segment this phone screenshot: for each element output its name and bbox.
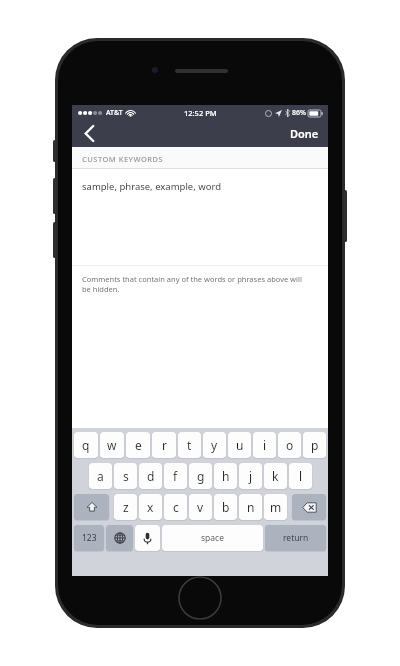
staticText: b: [222, 499, 230, 515]
staticText: a: [97, 468, 104, 484]
button[interactable]: q: [74, 432, 98, 458]
button[interactable]: u: [228, 432, 251, 458]
staticText: q: [82, 437, 90, 453]
staticText: s: [123, 468, 129, 484]
staticText: return: [283, 532, 309, 544]
staticText: t: [187, 437, 192, 453]
staticText: n: [247, 499, 255, 515]
staticText: j: [249, 468, 253, 484]
button[interactable]: Dictation: [135, 525, 160, 551]
staticText: CUSTOM KEYWORDS: [82, 154, 164, 164]
button[interactable]: b: [214, 494, 237, 520]
staticText: AT&T: [106, 108, 123, 118]
staticText: p: [311, 437, 319, 453]
button[interactable]: Done: [281, 120, 328, 147]
staticText: v: [197, 499, 204, 515]
staticText: Done: [290, 126, 319, 141]
button[interactable]: x: [139, 494, 162, 520]
staticText: space: [201, 532, 224, 544]
button[interactable]: s: [114, 463, 137, 489]
staticText: y: [211, 437, 218, 453]
button[interactable]: y: [203, 432, 226, 458]
staticText: e: [135, 437, 142, 453]
staticText: 12:52 PM: [184, 108, 217, 118]
button[interactable]: p: [303, 432, 326, 458]
staticText: g: [197, 468, 205, 484]
button[interactable]: a: [89, 463, 112, 489]
staticText: u: [236, 437, 244, 453]
button[interactable]: m: [264, 494, 287, 520]
button[interactable]: return: [265, 525, 326, 551]
staticText: l: [299, 468, 303, 484]
button[interactable]: f: [164, 463, 187, 489]
staticText: o: [286, 437, 294, 453]
button[interactable]: k: [264, 463, 287, 489]
staticText: z: [123, 499, 129, 515]
staticText: r: [162, 437, 167, 453]
button[interactable]: z: [114, 494, 137, 520]
staticText: d: [147, 468, 155, 484]
staticText: 123: [82, 532, 97, 544]
staticText: m: [270, 499, 282, 515]
button[interactable]: g: [189, 463, 212, 489]
staticText: Comments that contain any of the words o…: [82, 274, 312, 294]
button[interactable]: 123: [74, 525, 104, 551]
button[interactable]: r: [152, 432, 176, 458]
button[interactable]: j: [239, 463, 262, 489]
staticText: 86%: [292, 108, 306, 118]
button[interactable]: v: [189, 494, 212, 520]
button[interactable]: n: [239, 494, 262, 520]
staticText: x: [147, 499, 154, 515]
button[interactable]: Delete: [292, 494, 326, 520]
staticText: w: [107, 437, 117, 453]
button[interactable]: h: [214, 463, 237, 489]
button[interactable]: t: [178, 432, 201, 458]
button[interactable]: d: [139, 463, 162, 489]
button[interactable]: Back: [72, 120, 106, 147]
button[interactable]: w: [100, 432, 124, 458]
button[interactable]: sample, phrase, example, word: [72, 169, 328, 265]
staticText: sample, phrase, example, word: [82, 180, 221, 193]
staticText: h: [222, 468, 230, 484]
staticText: k: [272, 468, 279, 484]
button[interactable]: space: [162, 525, 263, 551]
button[interactable]: c: [164, 494, 187, 520]
staticText: f: [173, 468, 178, 484]
staticText: c: [173, 499, 179, 515]
staticText: i: [263, 437, 267, 453]
button[interactable]: i: [253, 432, 276, 458]
button[interactable]: e: [126, 432, 150, 458]
button[interactable]: o: [278, 432, 301, 458]
button[interactable]: Shift: [74, 494, 109, 520]
button[interactable]: Switch keyboard: [106, 525, 133, 551]
button[interactable]: l: [289, 463, 312, 489]
